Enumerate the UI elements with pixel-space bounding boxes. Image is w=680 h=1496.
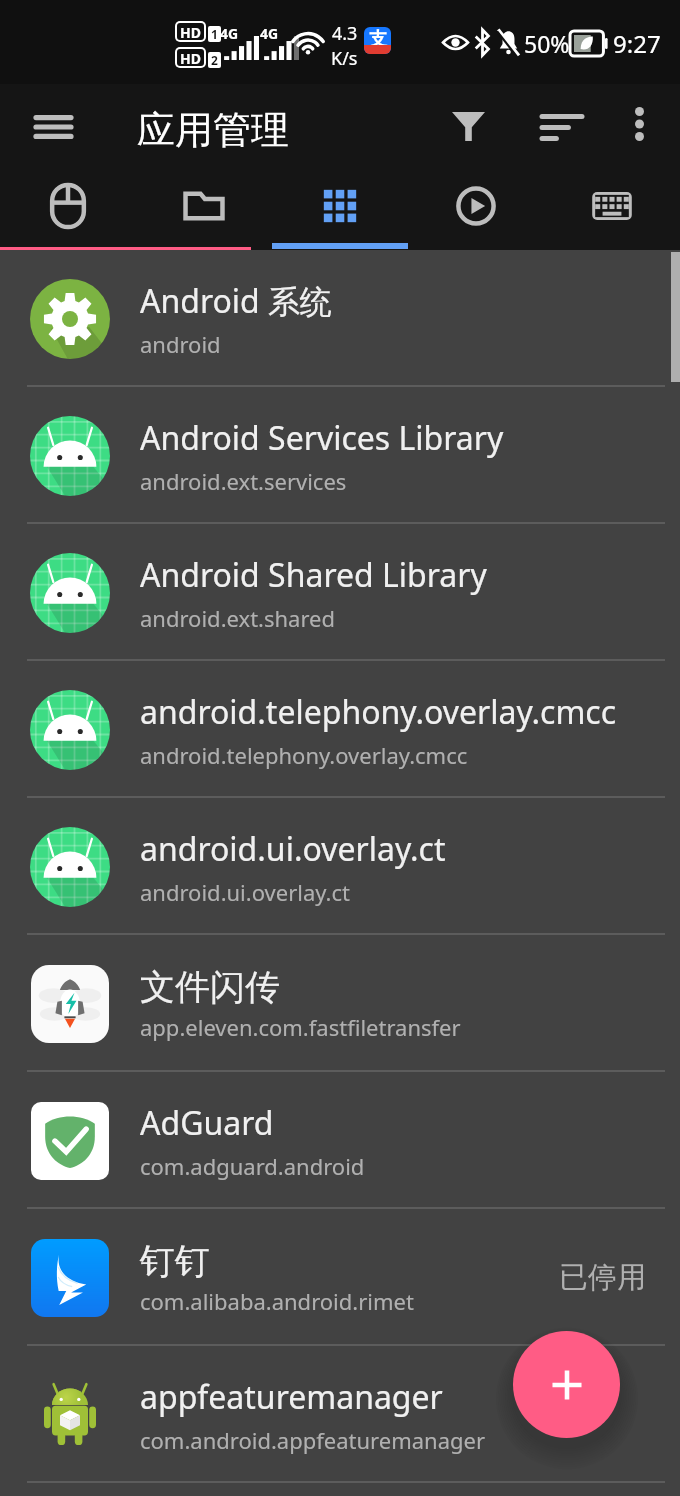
staticText: android (140, 329, 221, 359)
button[interactable]: More options (602, 87, 676, 161)
staticText: AdGuard (140, 1101, 274, 1145)
button[interactable]: Android Services Library (0, 387, 680, 524)
staticText: 4.3 (332, 21, 358, 46)
staticText: android.ui.overlay.ct (140, 827, 446, 871)
staticText: android.ui.overlay.ct (140, 877, 350, 907)
staticText: com.alibaba.android.rimet (140, 1286, 414, 1316)
staticText: 已停用 (559, 1259, 646, 1296)
staticText: 应用管理 (137, 106, 289, 154)
staticText: android.telephony.overlay.cmcc (140, 690, 617, 734)
staticText: com.adguard.android (140, 1151, 365, 1181)
staticText: 钉钉 (140, 1239, 210, 1283)
staticText: K/s (331, 46, 358, 71)
button[interactable]: Tab 4 (544, 176, 680, 250)
button[interactable]: android.telephony.overlay.cmcc (0, 661, 680, 798)
staticText: 2 (211, 52, 218, 68)
button[interactable]: Android Shared Library (0, 524, 680, 661)
button[interactable]: Tab 0 (0, 176, 136, 250)
button[interactable]: Menu (18, 95, 88, 165)
staticText: android.telephony.overlay.cmcc (140, 740, 468, 770)
staticText: 文件闪传 (140, 965, 280, 1009)
button[interactable]: Android 系统 (0, 250, 680, 387)
button[interactable]: Tab 1 (136, 176, 272, 250)
staticText: 4G (260, 24, 279, 43)
staticText: Android Services Library (140, 416, 504, 460)
staticText: 9:27 (613, 27, 661, 60)
staticText: 1 (211, 26, 218, 42)
staticText: android.ext.services (140, 466, 347, 496)
staticText: HD (180, 49, 201, 66)
button[interactable]: Filter (431, 88, 505, 162)
button[interactable]: appfeaturemanager (0, 1346, 680, 1483)
button[interactable]: android.ui.overlay.ct (0, 798, 680, 935)
staticText: HD (180, 23, 201, 40)
button[interactable]: Tab 3 (408, 176, 544, 250)
button[interactable]: 文件闪传 (0, 935, 680, 1072)
staticText: Android 系统 (140, 279, 333, 323)
button[interactable]: AdGuard (0, 1072, 680, 1209)
staticText: Android Shared Library (140, 553, 487, 597)
staticText: app.eleven.com.fastfiletransfer (140, 1012, 461, 1042)
staticText: 50% (524, 28, 570, 59)
staticText: 4G (220, 24, 239, 43)
staticText: com.android.appfeaturemanager (140, 1425, 486, 1455)
staticText: appfeaturemanager (140, 1375, 443, 1419)
button[interactable]: Add (513, 1331, 620, 1438)
staticText: android.ext.shared (140, 603, 336, 633)
staticText: 支 (369, 28, 387, 51)
button[interactable]: 钉钉 (0, 1209, 680, 1346)
button[interactable]: Tab 2 (272, 176, 408, 250)
button[interactable]: Sort (525, 90, 599, 164)
